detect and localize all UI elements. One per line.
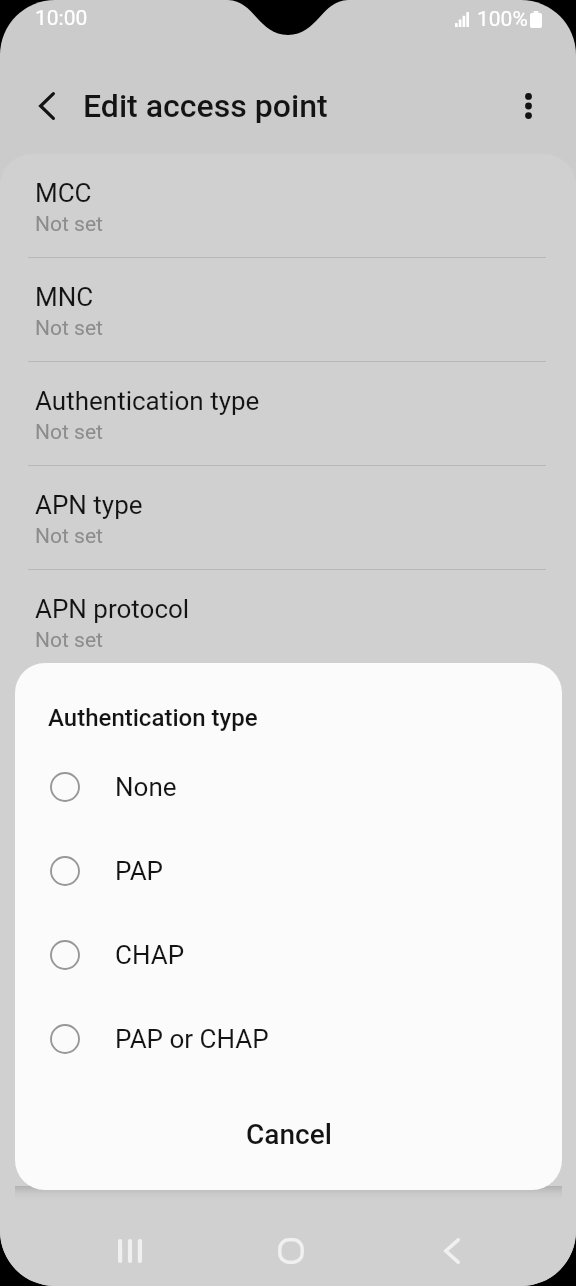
staticText: None [115, 772, 177, 802]
staticText: 10:00 [35, 6, 88, 31]
button[interactable]: APN roaming protocol [0, 674, 576, 777]
staticText: Not set [35, 316, 103, 341]
staticText: APN type [35, 490, 143, 520]
button[interactable]: Back [428, 1227, 476, 1275]
staticText: Edit access point [83, 87, 328, 125]
button[interactable]: APN protocol [0, 570, 576, 673]
staticText: PAP or CHAP [115, 1024, 269, 1054]
button[interactable]: MCC [0, 154, 576, 257]
staticText: APN protocol [35, 594, 190, 624]
staticText: Not set [35, 420, 103, 445]
staticText: Authentication type [48, 704, 258, 732]
staticText: PAP [115, 856, 164, 886]
button[interactable]: Home [267, 1227, 315, 1275]
button[interactable]: Back [24, 83, 70, 129]
button[interactable]: PAP [15, 829, 562, 913]
button[interactable]: APN type [0, 466, 576, 569]
staticText: MCC [35, 178, 92, 208]
staticText: Not set [35, 836, 103, 861]
staticText: 100% [477, 7, 528, 32]
button[interactable]: Cancel [15, 1078, 562, 1190]
staticText: CHAP [115, 940, 185, 970]
button[interactable]: Recents [106, 1227, 154, 1275]
staticText: Not set [35, 212, 103, 237]
staticText: Cancel [246, 1118, 332, 1151]
button[interactable]: PAP or CHAP [15, 997, 562, 1081]
button[interactable]: More options [505, 83, 551, 129]
staticText: Not set [35, 524, 103, 549]
staticText: Not set [35, 628, 103, 653]
button[interactable]: None [15, 745, 562, 829]
staticText: APN roaming protocol [35, 698, 292, 728]
button[interactable]: MNC [0, 258, 576, 361]
button[interactable]: Authentication type [0, 362, 576, 465]
button[interactable]: Bearer [0, 778, 576, 881]
staticText: Authentication type [35, 386, 260, 416]
staticText: MNC [35, 282, 94, 312]
button[interactable]: CHAP [15, 913, 562, 997]
